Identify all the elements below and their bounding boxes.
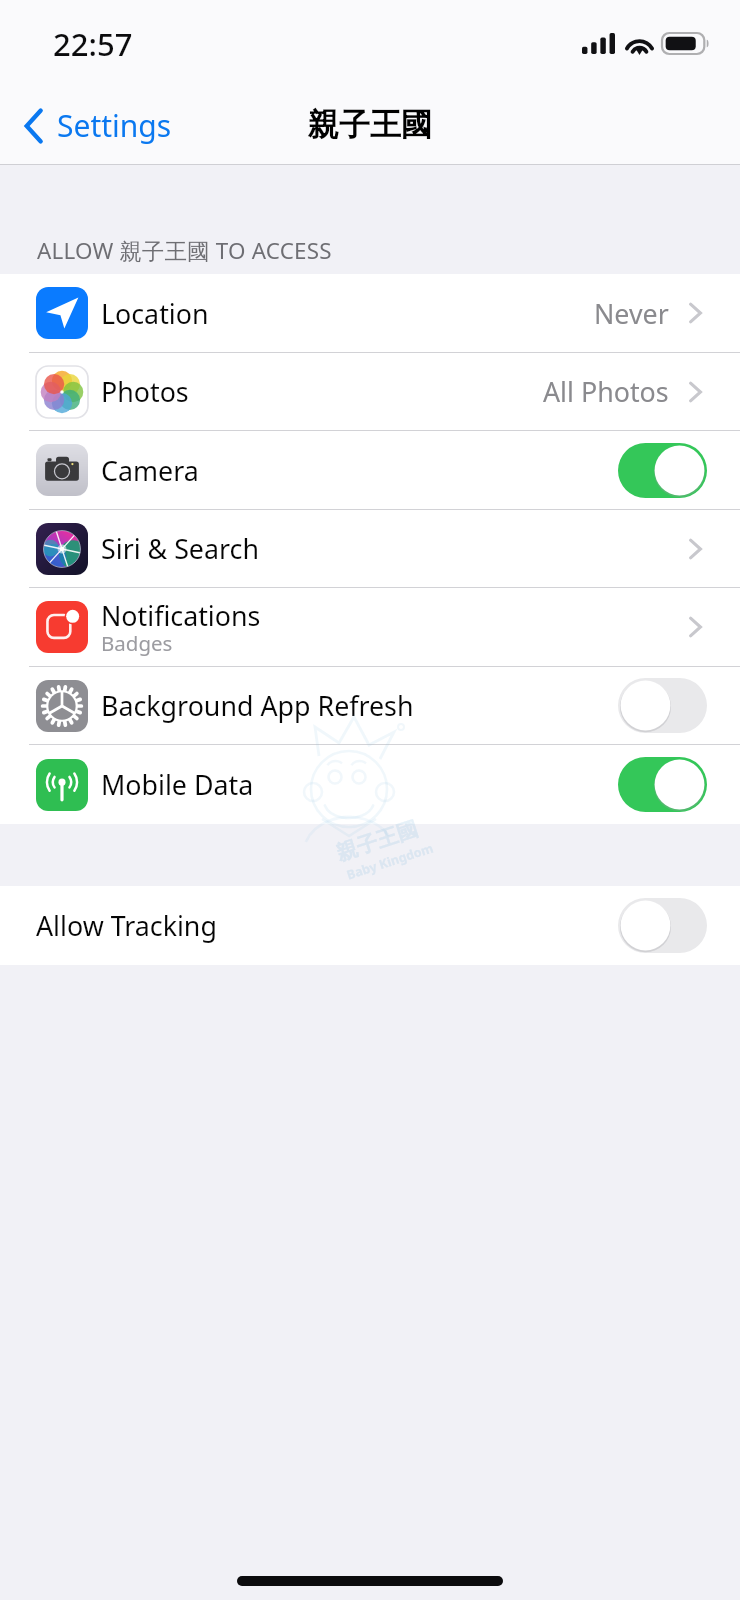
staticText: Siri & Search <box>101 530 259 567</box>
staticText: Photos <box>101 373 189 410</box>
button[interactable]: Toggle on <box>618 443 707 498</box>
button[interactable]: Back to Settings <box>24 86 184 165</box>
button[interactable]: Mobile Data <box>0 745 740 824</box>
staticText: Location <box>101 295 209 332</box>
button[interactable]: Notifications <box>0 588 740 666</box>
staticText: Mobile Data <box>101 766 254 803</box>
button[interactable]: Background App Refresh <box>0 667 740 744</box>
staticText: 親子王國 <box>333 816 421 866</box>
staticText: 親子王國 <box>308 105 432 144</box>
staticText: Camera <box>101 452 199 489</box>
button[interactable]: Location <box>0 274 740 352</box>
staticText: ALLOW 親子王國 TO ACCESS <box>37 235 332 266</box>
staticText: Notifications <box>101 597 261 634</box>
button[interactable]: Toggle off <box>618 898 707 953</box>
button[interactable]: Camera <box>0 431 740 509</box>
button[interactable]: Photos <box>0 353 740 430</box>
button[interactable]: Siri & Search <box>0 510 740 587</box>
staticText: All Photos <box>543 373 669 410</box>
staticText: Baby Kingdom <box>345 839 435 883</box>
staticText: Badges <box>101 629 173 657</box>
button[interactable]: Toggle off <box>618 678 707 733</box>
staticText: Background App Refresh <box>101 687 414 724</box>
button[interactable]: Toggle on <box>618 757 707 812</box>
button[interactable]: Allow Tracking <box>0 886 740 965</box>
staticText: 22:57 <box>53 23 133 65</box>
staticText: Never <box>594 295 669 332</box>
staticText: Settings <box>57 105 172 146</box>
staticText: Allow Tracking <box>36 907 217 944</box>
